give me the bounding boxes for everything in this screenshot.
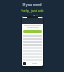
staticText: help, just ask xyxy=(21,8,44,13)
staticText: us anything xyxy=(22,14,42,19)
staticText: If you need xyxy=(22,2,42,7)
button[interactable] xyxy=(23,30,42,33)
